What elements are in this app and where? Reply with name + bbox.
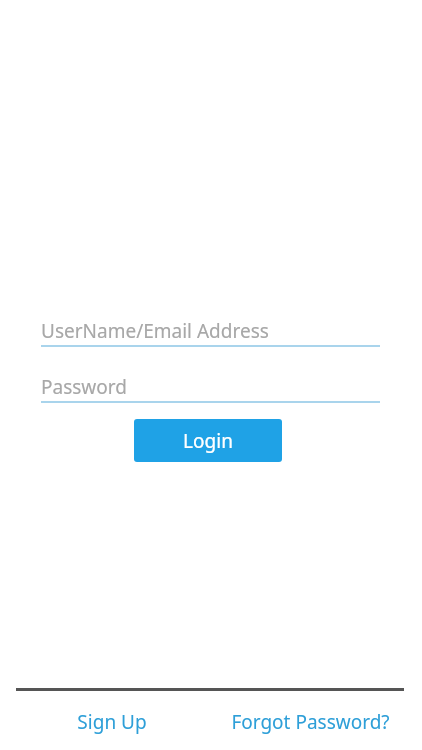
- button[interactable]: Password: [41, 374, 380, 403]
- button[interactable]: Forgot Password?: [224, 705, 396, 739]
- staticText: Forgot Password?: [231, 709, 390, 735]
- button[interactable]: Login: [134, 419, 282, 462]
- staticText: Password: [41, 374, 127, 399]
- staticText: Sign Up: [77, 709, 147, 735]
- button[interactable]: UserName/Email Address: [41, 318, 380, 347]
- staticText: Login: [183, 428, 233, 454]
- button[interactable]: Sign Up: [0, 705, 224, 739]
- staticText: UserName/Email Address: [41, 318, 269, 343]
